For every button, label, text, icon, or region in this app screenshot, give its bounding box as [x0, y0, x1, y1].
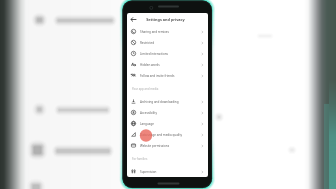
staticText: Archiving and downloading [140, 100, 179, 104]
staticText: Limited interactions [140, 52, 168, 56]
button[interactable]: Hidden words [127, 59, 208, 70]
staticText: Your app and media [132, 87, 159, 91]
staticText: Supervision [140, 170, 157, 174]
staticText: Sharing and remixes [140, 30, 169, 34]
staticText: Language [140, 122, 155, 126]
staticText: Accessibility [140, 111, 157, 115]
staticText: Website permissions [140, 144, 170, 148]
staticText: For families [132, 157, 148, 161]
button[interactable]: Accessibility [127, 107, 208, 118]
staticText: Restricted [140, 41, 155, 45]
button[interactable]: Back [130, 16, 137, 23]
staticText: Follow and invite friends [140, 74, 175, 78]
button[interactable]: Language [127, 118, 208, 129]
button[interactable]: Archiving and downloading [127, 96, 208, 107]
staticText: Hidden words [140, 63, 160, 67]
staticText: Settings and privacy [146, 17, 185, 22]
staticText: Data usage and media quality [140, 133, 182, 137]
button[interactable]: Data usage and media quality [127, 129, 208, 140]
button[interactable]: Sharing and remixes [127, 26, 208, 37]
button[interactable]: Website permissions [127, 140, 208, 151]
button[interactable]: Follow and invite friends [127, 70, 208, 81]
button[interactable]: Limited interactions [127, 48, 208, 59]
button[interactable]: Supervision [127, 166, 208, 177]
button[interactable]: Restricted [127, 37, 208, 48]
